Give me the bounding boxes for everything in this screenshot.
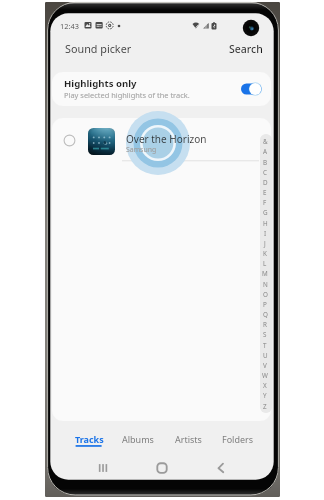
staticText: W xyxy=(262,371,268,380)
staticText: Albums xyxy=(122,433,154,445)
staticText: P xyxy=(263,300,267,309)
staticText: U xyxy=(263,351,268,360)
staticText: Tracks xyxy=(75,433,104,445)
staticText: K xyxy=(263,249,267,258)
staticText: Search xyxy=(229,42,263,56)
staticText: G xyxy=(263,208,268,217)
staticText: Samsung xyxy=(126,145,157,154)
button[interactable]: Alphabet index xyxy=(260,134,272,413)
button[interactable]: Highlights only toggle xyxy=(241,83,262,95)
staticText: V xyxy=(263,361,267,370)
staticText: F xyxy=(263,198,267,207)
staticText: B xyxy=(263,158,268,167)
staticText: Highlights only xyxy=(64,77,137,90)
staticText: Artists xyxy=(175,433,202,445)
staticText: A xyxy=(263,147,268,156)
staticText: Play selected highlights of the track. xyxy=(64,90,190,100)
button[interactable]: Home xyxy=(150,456,174,480)
staticText: J xyxy=(264,239,266,248)
staticText: Y xyxy=(263,391,267,400)
button[interactable]: Search xyxy=(229,42,263,56)
staticText: X xyxy=(263,381,267,390)
staticText: H xyxy=(263,219,268,228)
staticText: T xyxy=(263,341,267,350)
staticText: & xyxy=(263,137,268,146)
button[interactable]: Select track xyxy=(63,134,76,147)
button[interactable]: Sound picker xyxy=(65,41,132,56)
button[interactable]: Artists xyxy=(165,426,211,452)
staticText: N xyxy=(263,280,268,289)
staticText: Sound picker xyxy=(65,41,132,56)
staticText: Folders xyxy=(222,433,254,445)
button[interactable]: Tracks xyxy=(66,426,112,452)
staticText: 12:43 xyxy=(60,21,79,31)
button[interactable]: Recents xyxy=(91,456,115,480)
staticText: Q xyxy=(263,310,268,319)
staticText: C xyxy=(263,168,267,177)
button[interactable]: Albums xyxy=(115,426,161,452)
button[interactable]: Back xyxy=(209,456,233,480)
staticText: Over the Horizon xyxy=(126,132,207,146)
staticText: O xyxy=(263,290,268,299)
staticText: L xyxy=(263,259,267,268)
button[interactable] xyxy=(52,120,271,161)
button[interactable] xyxy=(52,72,271,106)
staticText: E xyxy=(263,188,267,197)
staticText: M xyxy=(262,269,268,278)
staticText: S xyxy=(263,330,267,339)
staticText: R xyxy=(263,320,267,329)
staticText: Z xyxy=(263,402,267,411)
staticText: I xyxy=(264,229,267,238)
staticText: D xyxy=(263,178,268,187)
button[interactable]: Folders xyxy=(215,426,261,452)
